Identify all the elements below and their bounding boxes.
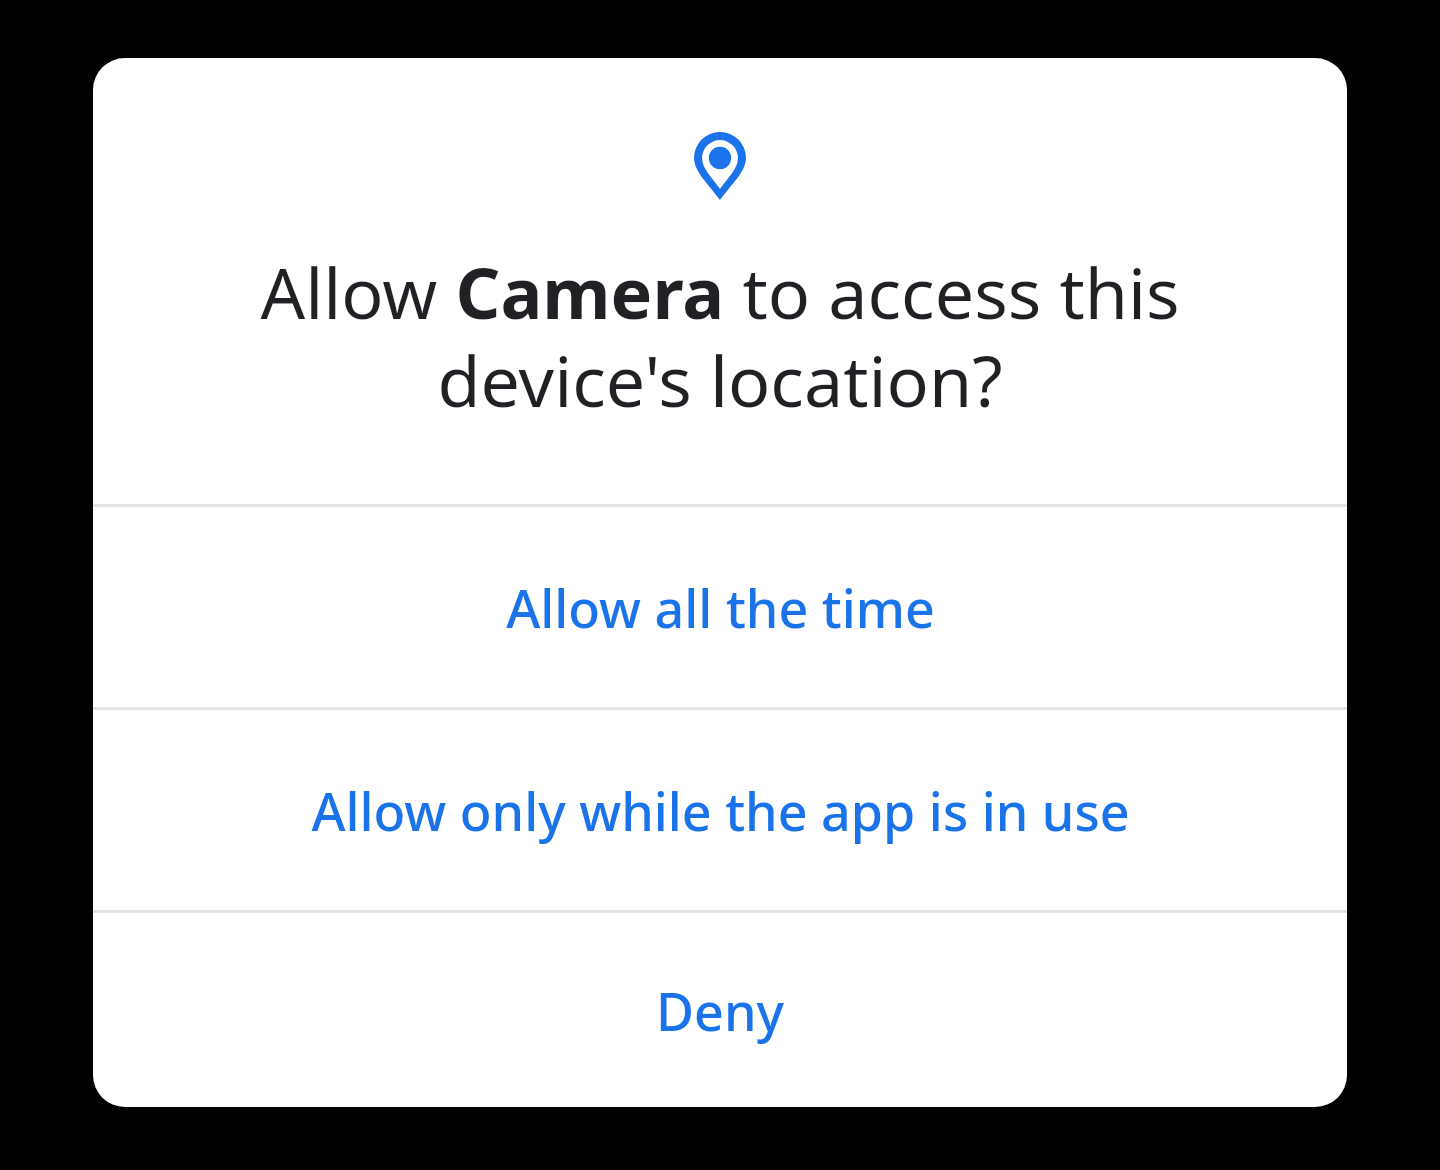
button[interactable]: Deny	[93, 913, 1347, 1107]
staticText: Allow all the time	[506, 572, 935, 643]
staticText: Allow only while the app is in use	[311, 775, 1130, 846]
staticText: Deny	[656, 975, 784, 1046]
button[interactable]: Allow all the time	[93, 507, 1347, 707]
other: Location	[694, 132, 746, 200]
button[interactable]: Allow only while the app is in use	[93, 710, 1347, 910]
staticText: Allow Camera to access this device's loc…	[153, 244, 1287, 428]
